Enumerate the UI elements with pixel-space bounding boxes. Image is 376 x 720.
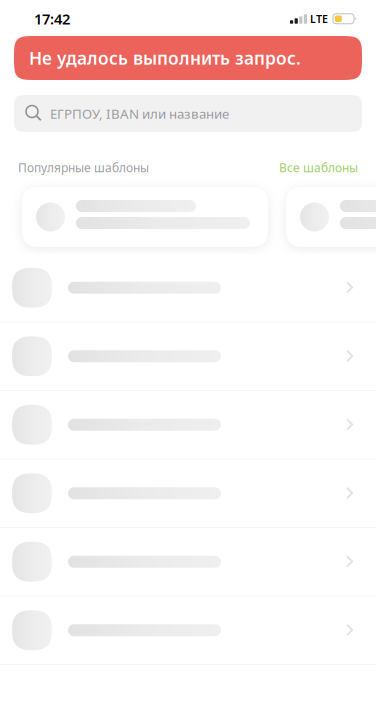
button[interactable]: Контрагент [0, 254, 376, 321]
button[interactable]: Шаблон [22, 187, 268, 247]
button[interactable]: Все шаблоны [279, 159, 358, 175]
staticText: Все шаблоны [279, 159, 358, 175]
staticText: Популярные шаблоны [18, 159, 149, 175]
staticText: ЕГРПОУ, IBAN или название [50, 105, 229, 122]
button[interactable]: Контрагент [0, 391, 376, 458]
button[interactable]: ЕГРПОУ, IBAN или название [14, 95, 362, 132]
button[interactable]: Контрагент [0, 322, 376, 390]
button[interactable]: Контрагент [0, 459, 376, 527]
staticText: LTE [310, 12, 328, 26]
button[interactable]: Шаблон [286, 187, 376, 247]
button[interactable]: Контрагент [0, 596, 376, 664]
staticText: Не удалось выполнить запрос. [29, 46, 301, 69]
staticText: 17:42 [34, 9, 70, 28]
button[interactable]: Контрагент [0, 528, 376, 595]
